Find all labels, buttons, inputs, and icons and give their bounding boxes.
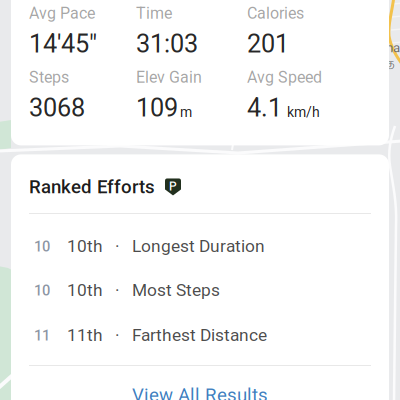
button[interactable]: View All Results xyxy=(11,376,389,400)
staticText: Time xyxy=(136,4,172,23)
staticText: 4.1 xyxy=(247,93,282,123)
staticText: Elev Gain xyxy=(136,68,202,87)
button[interactable]: 11 xyxy=(11,313,389,357)
staticText: m xyxy=(180,104,192,120)
staticText: Avg Pace xyxy=(29,4,95,23)
staticText: 201 xyxy=(247,29,289,59)
staticText: 11th · Farthest Distance xyxy=(67,325,267,345)
staticText: Ranked Efforts xyxy=(29,176,155,198)
staticText: 10th · Longest Duration xyxy=(67,236,265,256)
staticText: Steps xyxy=(29,68,69,87)
button[interactable]: 10 xyxy=(11,224,389,268)
staticText: 11 xyxy=(34,327,50,344)
staticText: 10 xyxy=(34,238,50,255)
staticText: 14'45" xyxy=(29,29,97,59)
staticText: km/h xyxy=(287,104,320,120)
staticText: Avg Speed xyxy=(247,68,322,87)
staticText: 109 xyxy=(136,93,178,123)
staticText: 10th · Most Steps xyxy=(67,280,220,300)
staticText: ha xyxy=(386,40,400,56)
staticText: Calories xyxy=(247,4,304,23)
staticText: P xyxy=(169,179,177,193)
staticText: View All Results xyxy=(132,384,268,400)
button[interactable]: 10 xyxy=(11,268,389,312)
staticText: 10 xyxy=(34,282,50,299)
staticText: 31:03 xyxy=(136,29,198,59)
staticText: 3068 xyxy=(29,93,85,123)
staticText: த xyxy=(386,56,395,72)
